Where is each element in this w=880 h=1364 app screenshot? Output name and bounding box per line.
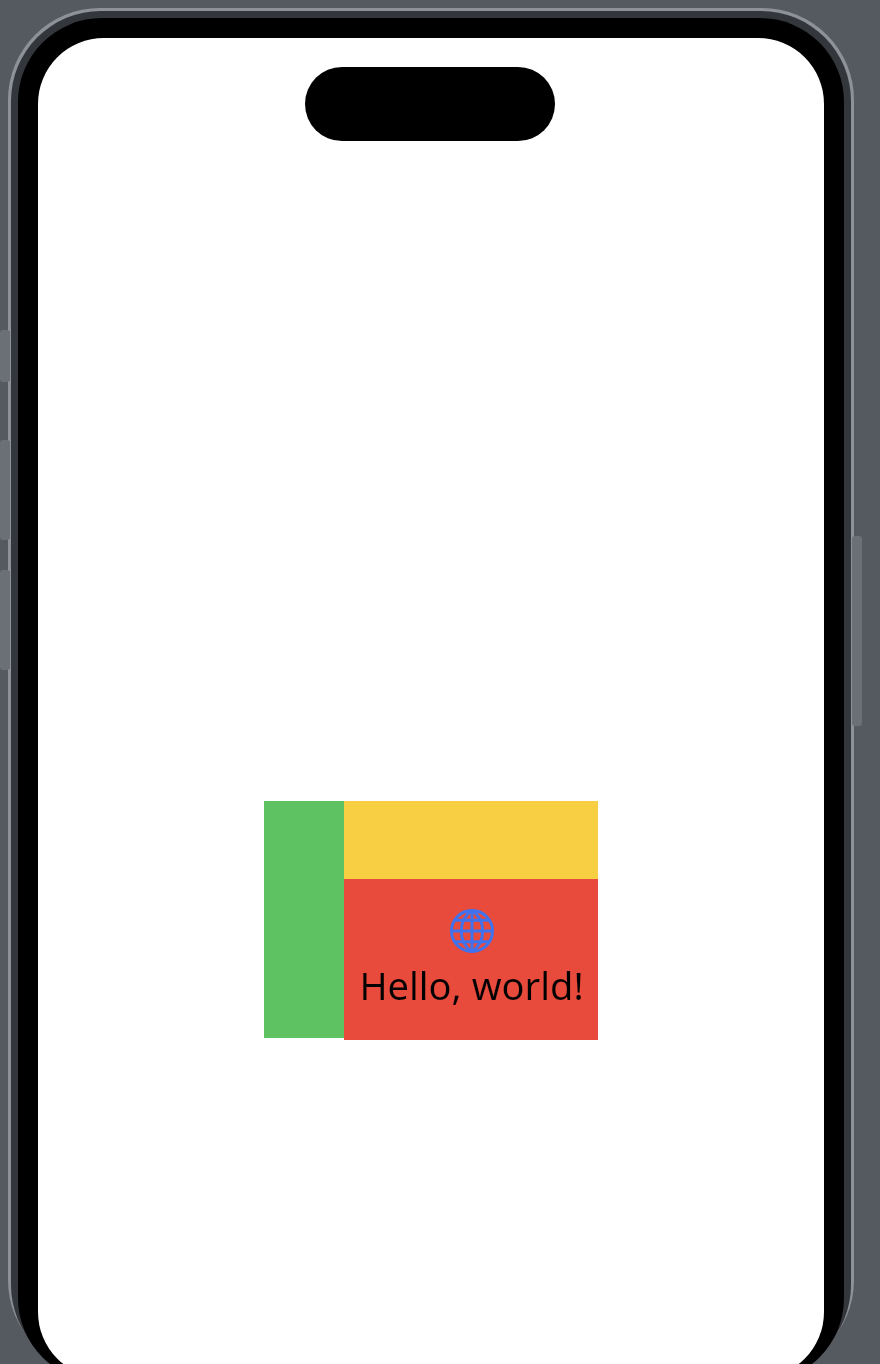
staticText: Hello, world! bbox=[359, 959, 584, 1011]
button[interactable]: Globe bbox=[264, 801, 598, 1038]
other: Globe bbox=[450, 909, 494, 953]
